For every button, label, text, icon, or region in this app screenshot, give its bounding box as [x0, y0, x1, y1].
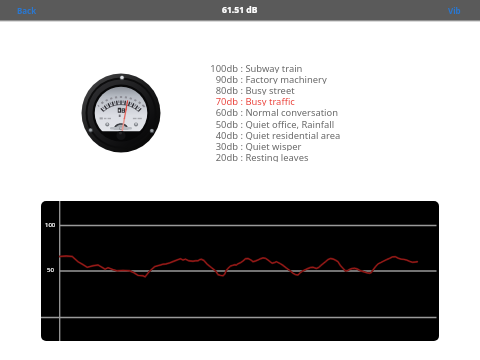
staticText: 70db: [215, 95, 238, 106]
staticText: 40db: [215, 129, 238, 140]
staticText: : Resting leaves: [238, 151, 309, 162]
staticText: 50: [47, 266, 54, 274]
button[interactable]: Vib: [448, 5, 461, 16]
button[interactable]: 90db: [210, 73, 327, 84]
button[interactable]: 80db: [210, 84, 295, 95]
staticText: : Quiet office, Rainfall: [238, 118, 335, 129]
button[interactable]: Back: [17, 5, 37, 16]
staticText: Back: [17, 5, 37, 16]
staticText: : Factory machinery: [238, 73, 327, 84]
staticText: : Subway train: [238, 62, 303, 73]
staticText: : Busy street: [238, 84, 295, 95]
staticText: : Normal conversation: [238, 106, 339, 117]
button[interactable]: 60db: [210, 106, 339, 117]
button[interactable]: 70db: [210, 95, 295, 106]
staticText: : Busy traffic: [238, 95, 295, 106]
button[interactable]: 20db: [210, 151, 309, 162]
staticText: 90db: [215, 73, 238, 84]
staticText: 20db: [215, 151, 238, 162]
button[interactable]: 30db: [210, 140, 302, 151]
staticText: 100: [45, 221, 56, 229]
button[interactable]: 40db: [210, 129, 341, 140]
staticText: 100db: [210, 62, 238, 73]
button[interactable]: 50db: [210, 118, 335, 129]
staticText: 60db: [215, 106, 238, 117]
staticText: Vib: [448, 5, 461, 16]
staticText: : Quiet wisper: [238, 140, 302, 151]
staticText: 30db: [215, 140, 238, 151]
staticText: 50db: [215, 118, 238, 129]
staticText: : Quiet residential area: [238, 129, 341, 140]
staticText: 61.51 dB: [222, 4, 258, 16]
button[interactable]: 100db: [210, 62, 303, 73]
staticText: 80db: [215, 84, 238, 95]
